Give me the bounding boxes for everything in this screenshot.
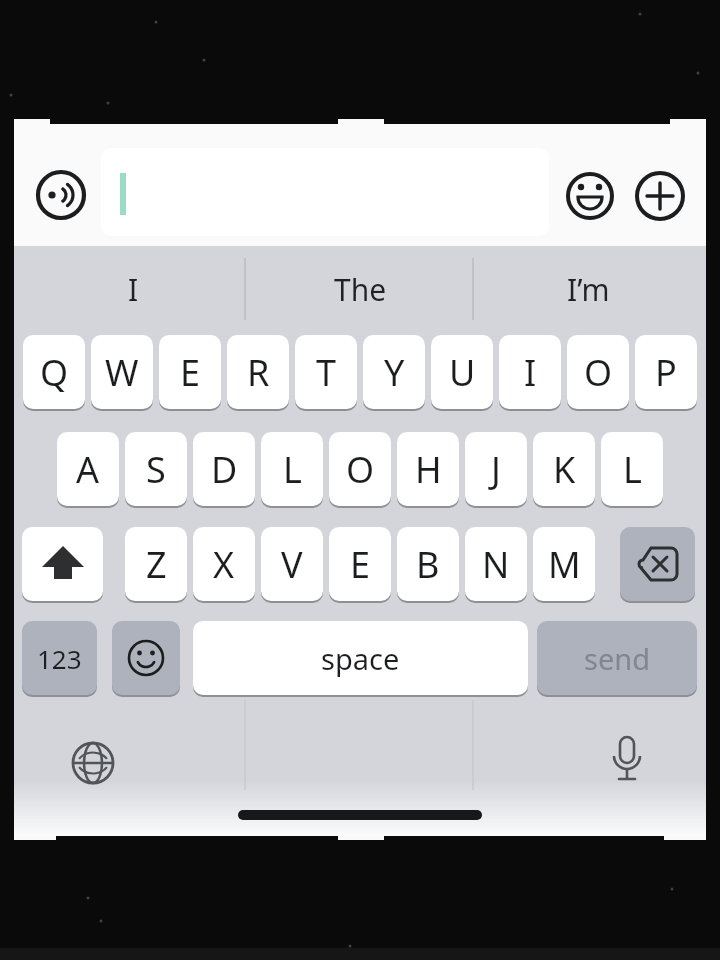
staticText: E — [350, 540, 371, 589]
staticText: S — [146, 445, 166, 494]
button[interactable]: W — [91, 335, 153, 409]
button[interactable]: H — [397, 432, 459, 506]
button[interactable]: U — [431, 335, 493, 409]
staticText: space — [321, 639, 400, 678]
button[interactable] — [112, 621, 180, 695]
button[interactable]: E — [329, 527, 391, 601]
button[interactable]: I’m — [528, 246, 648, 332]
button[interactable]: S — [125, 432, 187, 506]
staticText: I’m — [567, 269, 610, 310]
staticText: E — [180, 348, 201, 397]
button[interactable]: Z — [125, 527, 187, 601]
staticText: R — [247, 348, 270, 397]
button[interactable]: I — [499, 335, 561, 409]
button[interactable]: B — [397, 527, 459, 601]
button[interactable]: T — [295, 335, 357, 409]
button[interactable]: Y — [363, 335, 425, 409]
button[interactable]: M — [533, 527, 595, 601]
staticText: L — [283, 445, 302, 494]
button[interactable]: O — [567, 335, 629, 409]
button[interactable] — [635, 171, 685, 221]
staticText: V — [281, 540, 303, 589]
button[interactable] — [101, 148, 549, 236]
staticText: Q — [40, 348, 69, 397]
button[interactable]: Q — [23, 335, 85, 409]
staticText: K — [553, 445, 576, 494]
button[interactable] — [68, 738, 118, 788]
button[interactable]: E — [159, 335, 221, 409]
staticText: send — [584, 639, 651, 678]
staticText: J — [491, 445, 501, 494]
staticText: T — [316, 348, 337, 397]
button[interactable] — [566, 172, 614, 220]
staticText: The — [334, 269, 387, 310]
button[interactable]: N — [465, 527, 527, 601]
button[interactable]: I — [73, 246, 193, 332]
button[interactable]: The — [300, 246, 420, 332]
button[interactable]: 123 — [22, 621, 97, 695]
staticText: Y — [384, 348, 405, 397]
staticText: X — [213, 540, 235, 589]
staticText: A — [76, 445, 100, 494]
staticText: N — [482, 540, 510, 589]
button[interactable] — [605, 733, 649, 789]
staticText: P — [655, 348, 677, 397]
button[interactable]: send — [537, 621, 697, 695]
staticText: I — [128, 269, 139, 310]
button[interactable]: L — [261, 432, 323, 506]
button[interactable]: X — [193, 527, 255, 601]
button[interactable]: L — [601, 432, 663, 506]
staticText: Z — [146, 540, 167, 589]
button[interactable]: J — [465, 432, 527, 506]
button[interactable]: R — [227, 335, 289, 409]
button[interactable] — [35, 169, 87, 221]
button[interactable]: P — [635, 335, 697, 409]
staticText: U — [449, 348, 476, 397]
staticText: 123 — [37, 641, 82, 676]
button[interactable]: space — [193, 621, 528, 695]
button[interactable]: O — [329, 432, 391, 506]
staticText: W — [105, 348, 139, 397]
button[interactable] — [22, 527, 103, 601]
button[interactable]: A — [57, 432, 119, 506]
staticText: O — [584, 348, 613, 397]
button[interactable] — [620, 527, 695, 601]
staticText: M — [548, 540, 581, 589]
staticText: B — [416, 540, 440, 589]
staticText: I — [524, 348, 537, 397]
button[interactable]: K — [533, 432, 595, 506]
button[interactable]: V — [261, 527, 323, 601]
staticText: L — [623, 445, 642, 494]
button[interactable]: D — [193, 432, 255, 506]
staticText: D — [211, 445, 238, 494]
staticText: H — [415, 445, 442, 494]
staticText: O — [346, 445, 375, 494]
